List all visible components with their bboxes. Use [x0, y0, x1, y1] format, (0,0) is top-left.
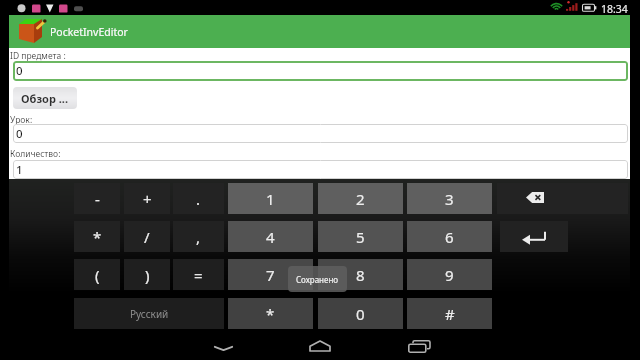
staticText: . [196, 189, 201, 209]
button[interactable]: ) [124, 259, 170, 290]
button[interactable]: Русский [74, 298, 224, 329]
button[interactable]: Enter [500, 221, 568, 252]
staticText: 0 [16, 63, 23, 79]
button[interactable]: * [74, 221, 120, 252]
staticText: * [266, 304, 275, 324]
button[interactable]: + [124, 183, 170, 214]
staticText: + [143, 189, 152, 209]
staticText: 0 [356, 304, 365, 324]
button[interactable]: 6 [407, 221, 492, 252]
staticText: Русский [130, 307, 169, 321]
button[interactable]: 3 [407, 183, 492, 214]
staticText: 5 [356, 227, 365, 247]
staticText: - [95, 189, 100, 209]
staticText: 1 [16, 162, 23, 178]
button[interactable]: Обзор ... [13, 87, 77, 109]
button[interactable]: Recents [403, 333, 437, 355]
button[interactable]: = [173, 259, 224, 290]
button[interactable]: - [74, 183, 120, 214]
button[interactable]: Home [303, 333, 337, 355]
staticText: 9 [445, 265, 454, 285]
staticText: ) [145, 265, 150, 285]
staticText: 0 [16, 126, 23, 142]
button[interactable]: . [173, 183, 224, 214]
staticText: 3 [445, 189, 454, 209]
staticText: ( [95, 265, 100, 285]
button[interactable]: # [407, 298, 492, 329]
staticText: # [445, 304, 455, 324]
staticText: 7 [266, 265, 275, 285]
staticText: , [196, 227, 201, 247]
button[interactable]: 0 [13, 61, 628, 81]
staticText: Количество: [10, 148, 61, 160]
staticText: 2 [356, 189, 365, 209]
button[interactable]: 5 [318, 221, 403, 252]
button[interactable]: 2 [318, 183, 403, 214]
button[interactable]: ( [74, 259, 120, 290]
staticText: 1 [266, 189, 275, 209]
button[interactable]: 0 [318, 298, 403, 329]
staticText: Урок: [10, 114, 33, 126]
button[interactable]: , [173, 221, 224, 252]
staticText: / [144, 227, 150, 247]
staticText: ID предмета : [10, 50, 66, 62]
staticText: Обзор ... [21, 91, 69, 106]
button[interactable]: 1 [13, 160, 628, 179]
staticText: PocketInvEditor [50, 25, 128, 39]
button[interactable]: 4 [228, 221, 313, 252]
button[interactable]: / [124, 221, 170, 252]
button[interactable]: * [228, 298, 313, 329]
button[interactable]: Backspace [497, 183, 628, 214]
button[interactable]: 0 [13, 124, 628, 143]
staticText: = [194, 265, 203, 285]
staticText: 8 [356, 265, 365, 285]
staticText: 6 [445, 227, 454, 247]
button[interactable]: 9 [407, 259, 492, 290]
staticText: Сохранено [296, 274, 339, 285]
staticText: * [93, 227, 102, 247]
staticText: 18:34 [601, 2, 628, 16]
button[interactable]: Hide keyboard [206, 333, 240, 355]
staticText: 4 [266, 227, 275, 247]
button[interactable]: 1 [228, 183, 313, 214]
button[interactable]: 7 [228, 259, 313, 290]
button[interactable]: 8 [318, 259, 403, 290]
